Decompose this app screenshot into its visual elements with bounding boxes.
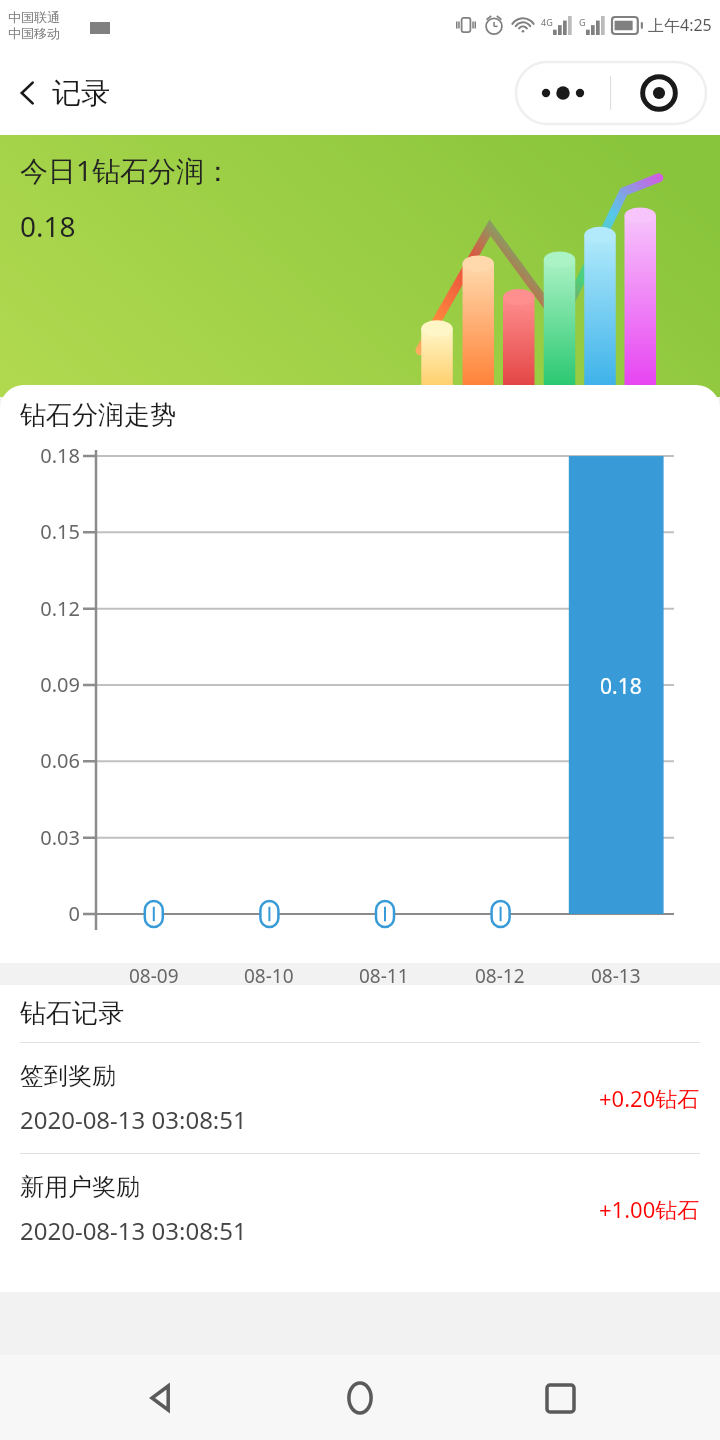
staticText: 0 [0, 900, 80, 927]
staticText: 钻石分润走势 [20, 399, 176, 432]
button[interactable]: 新用户奖励 [0, 1154, 720, 1264]
staticText: 0.06 [0, 747, 80, 774]
staticText: 钻石记录 [20, 997, 124, 1030]
staticText: 0.03 [0, 824, 80, 851]
staticText: 中国移动 [8, 25, 60, 41]
staticText: 0.15 [0, 518, 80, 545]
staticText: 2020-08-13 03:08:51 [20, 1103, 247, 1136]
staticText: 0.12 [0, 595, 80, 622]
staticText: +1.00钻石 [599, 1194, 700, 1224]
staticText: 0.18 [0, 442, 80, 469]
staticText: 0.18 [600, 672, 642, 701]
staticText: 记录 [52, 75, 110, 112]
button[interactable]: Back [122, 1359, 200, 1437]
button[interactable]: Back [0, 65, 56, 121]
staticText: 中国联通 [8, 9, 60, 25]
staticText: 08-10 [244, 963, 294, 985]
button[interactable]: 签到奖励 [0, 1043, 720, 1153]
staticText: +0.20钻石 [599, 1083, 700, 1113]
staticText: 今日1钻石分润： [20, 151, 233, 189]
staticText: 08-09 [129, 963, 179, 985]
staticText: 上午4:25 [648, 14, 712, 36]
staticText: 0.09 [0, 671, 80, 698]
staticText: 2020-08-13 03:08:51 [20, 1214, 247, 1247]
button[interactable]: Close [611, 62, 706, 124]
staticText: 08-11 [359, 963, 409, 985]
staticText: 新用户奖励 [20, 1172, 140, 1202]
staticText: 4G [541, 16, 553, 28]
staticText: G [579, 16, 586, 28]
button[interactable]: More [516, 62, 610, 124]
button[interactable]: Recents [521, 1359, 599, 1437]
staticText: 0.18 [20, 207, 76, 245]
staticText: 签到奖励 [20, 1061, 116, 1091]
staticText: 08-13 [591, 963, 641, 985]
button[interactable]: Home [321, 1359, 399, 1437]
staticText: 08-12 [475, 963, 525, 985]
